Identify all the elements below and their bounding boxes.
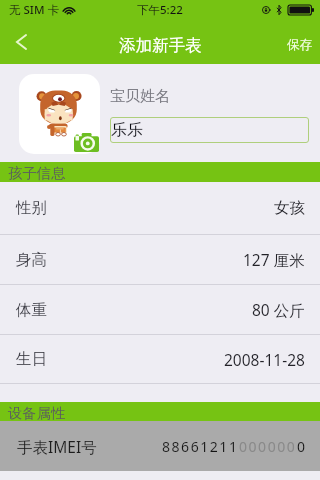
staticText: 乐乐 [111,120,143,140]
staticText: 宝贝姓名 [110,87,170,106]
button[interactable]: 生日 [0,335,320,383]
staticText: 孩子信息 [8,164,66,182]
button[interactable]: 性别 [0,182,320,234]
button[interactable]: 更换头像 [19,74,100,154]
button[interactable]: 体重 [0,285,320,334]
staticText: 2008-11-28 [224,349,305,370]
staticText: 下午5:22 [137,2,183,18]
staticText: 设备属性 [8,404,66,422]
staticText: 身高 [16,250,47,270]
staticText: 80 公斤 [252,299,305,320]
button[interactable]: 身高 [0,235,320,284]
staticText: 0 [297,437,307,456]
button[interactable]: 返回 [0,20,42,64]
staticText: 无 SIM 卡 [9,2,59,18]
staticText: 88661211 [162,437,239,456]
staticText: 体重 [16,300,47,320]
button[interactable]: 乐乐 [110,117,309,143]
staticText: 127 厘米 [243,249,305,270]
staticText: 000000 [239,437,297,456]
staticText: 生日 [16,349,47,369]
staticText: 女孩 [274,198,305,218]
staticText: 添加新手表 [119,35,202,56]
staticText: 保存 [287,37,312,53]
staticText: 性别 [16,198,47,218]
button[interactable]: 保存 [277,24,320,60]
staticText: 手表IMEI号 [17,436,97,457]
